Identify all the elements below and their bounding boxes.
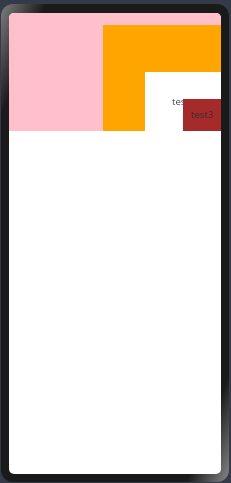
button[interactable]: test3 [191,108,214,121]
button[interactable]: White container [145,72,221,131]
button[interactable]: Orange container [103,25,221,131]
button[interactable]: Pink container [9,13,221,131]
button[interactable]: test [172,95,189,108]
button[interactable]: test3 [183,99,221,131]
